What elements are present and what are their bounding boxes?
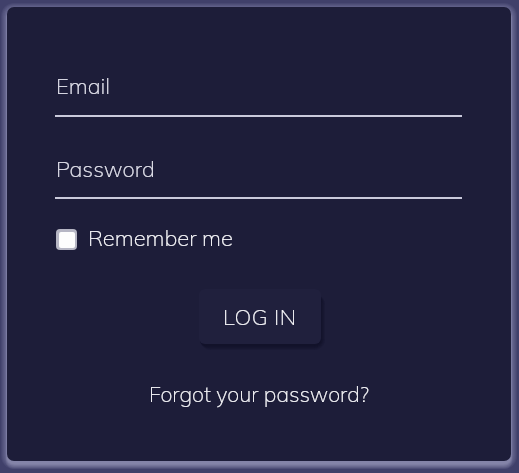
staticText: Password <box>56 155 155 183</box>
button[interactable]: Remember me <box>56 224 233 252</box>
staticText: Remember me <box>88 224 233 252</box>
staticText: Email <box>56 72 111 100</box>
button[interactable]: Password <box>55 153 462 199</box>
button[interactable]: Forgot your password? <box>149 380 370 407</box>
staticText: LOG IN <box>223 303 297 331</box>
button[interactable]: LOG IN <box>199 289 321 344</box>
button[interactable]: Email <box>55 70 462 117</box>
